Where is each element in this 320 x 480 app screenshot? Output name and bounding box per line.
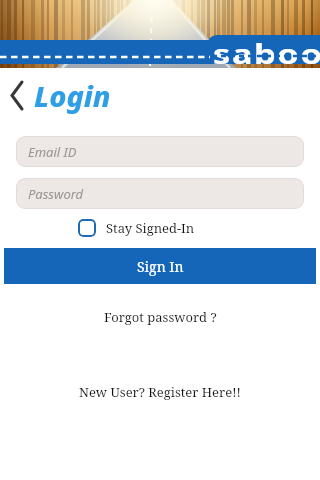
staticText: Stay Signed-In (106, 219, 195, 237)
button[interactable] (4, 77, 30, 113)
button[interactable]: Email ID (16, 136, 304, 167)
staticText: Forgot password ? (104, 308, 217, 326)
button[interactable]: Password (16, 178, 304, 209)
staticText: New User? Register Here!! (79, 383, 241, 401)
button[interactable]: New User? Register Here!! (79, 383, 241, 401)
button[interactable] (78, 219, 96, 237)
staticText: Login (34, 76, 111, 114)
staticText: Email ID (28, 143, 77, 161)
staticText: Sign In (137, 257, 184, 276)
button[interactable]: Sign In (4, 248, 316, 284)
staticText: Password (28, 185, 84, 203)
staticText: saboo (213, 36, 320, 71)
button[interactable]: Forgot password ? (104, 308, 217, 326)
